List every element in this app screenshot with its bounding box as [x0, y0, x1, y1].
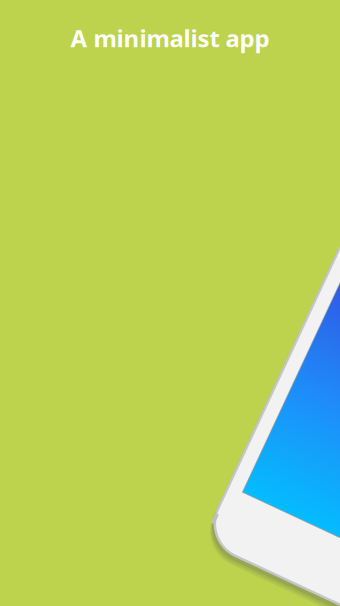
- staticText: A minimalist app: [70, 22, 269, 54]
